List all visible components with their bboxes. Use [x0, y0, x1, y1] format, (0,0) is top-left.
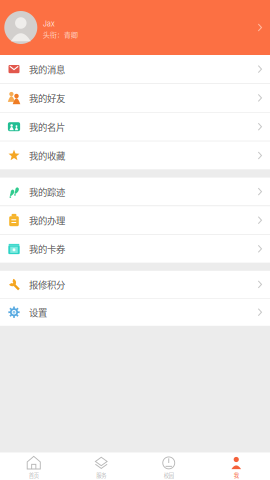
staticText: 我 [234, 471, 239, 479]
button[interactable]: 我的好友 [0, 84, 270, 112]
button[interactable]: 我的收藏 [0, 141, 270, 170]
staticText: 报修积分 [29, 278, 65, 291]
button[interactable]: Jax [0, 0, 270, 55]
staticText: 头衔：青卿 [43, 29, 78, 40]
button[interactable]: 服务 [67, 452, 135, 480]
staticText: 我的好友 [29, 91, 65, 105]
staticText: 我的办理 [29, 213, 65, 227]
staticText: 我的卡券 [29, 242, 65, 255]
button[interactable]: 我的名片 [0, 113, 270, 141]
staticText: 我的消息 [29, 62, 65, 76]
button[interactable]: 我的办理 [0, 206, 270, 234]
staticText: Jax [43, 19, 55, 28]
button[interactable]: 我的消息 [0, 55, 270, 83]
staticText: 我的名片 [29, 120, 65, 133]
staticText: 设置 [29, 305, 47, 319]
staticText: 我的踪迹 [29, 185, 65, 198]
staticText: 服务 [96, 471, 106, 479]
button[interactable]: 首页 [0, 452, 67, 480]
staticText: 我的收藏 [29, 149, 65, 162]
staticText: 校园 [164, 471, 174, 479]
button[interactable]: 我的踪迹 [0, 178, 270, 206]
button[interactable]: 我 [202, 452, 270, 480]
button[interactable]: 我的卡券 [0, 235, 270, 263]
button[interactable]: 设置 [0, 299, 270, 326]
button[interactable]: 报修积分 [0, 271, 270, 298]
staticText: 首页 [29, 471, 39, 479]
button[interactable]: 校园 [135, 452, 202, 480]
